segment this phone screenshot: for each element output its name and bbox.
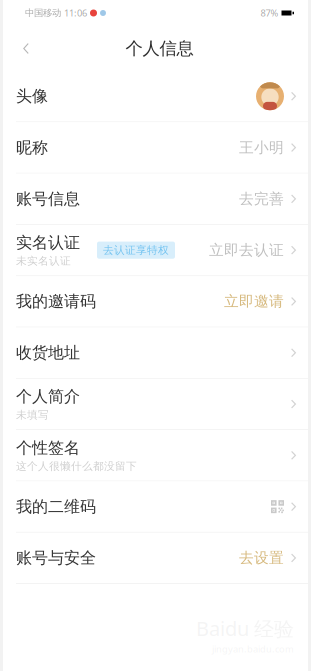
button[interactable]: 个性签名 <box>3 430 308 481</box>
button[interactable]: 收货地址 <box>3 327 308 379</box>
staticText: 个性签名 <box>16 438 80 458</box>
staticText: 王小明 <box>239 138 284 156</box>
staticText: 立即去认证 <box>209 241 284 259</box>
staticText: 这个人很懒什么都没留下 <box>16 460 137 473</box>
button[interactable]: 昵称 <box>3 122 308 174</box>
staticText: 去认证享特权 <box>103 244 169 257</box>
button[interactable]: 账号信息 <box>3 174 308 225</box>
button[interactable]: 我的邀请码 <box>3 276 308 327</box>
staticText: 账号与安全 <box>16 548 96 568</box>
staticText: 我的邀请码 <box>16 292 96 311</box>
staticText: 收货地址 <box>16 343 80 363</box>
button[interactable]: 账号与安全 <box>3 533 308 584</box>
staticText: 未实名认证 <box>16 254 71 267</box>
staticText: 未填写 <box>16 408 49 421</box>
button[interactable]: 返回 <box>11 33 41 63</box>
staticText: 立即邀请 <box>224 292 284 310</box>
staticText: 去完善 <box>239 190 284 208</box>
staticText: 昵称 <box>16 138 48 157</box>
button[interactable]: 实名认证 <box>3 225 308 276</box>
staticText: 11:06 <box>64 7 87 19</box>
staticText: 87% <box>260 7 278 19</box>
staticText: 账号信息 <box>16 189 80 209</box>
button[interactable]: 头像 <box>3 71 308 122</box>
staticText: 我的二维码 <box>16 497 96 516</box>
staticText: 个人简介 <box>16 387 80 406</box>
button[interactable]: 个人简介 <box>3 379 308 430</box>
staticText: 中国移动 <box>25 7 61 19</box>
staticText: 个人信息 <box>125 38 193 59</box>
staticText: 头像 <box>16 86 48 106</box>
button[interactable]: 我的二维码 <box>3 481 308 533</box>
staticText: 去设置 <box>239 549 284 567</box>
staticText: Baidu 经验 <box>196 615 294 642</box>
staticText: 实名认证 <box>16 233 80 252</box>
